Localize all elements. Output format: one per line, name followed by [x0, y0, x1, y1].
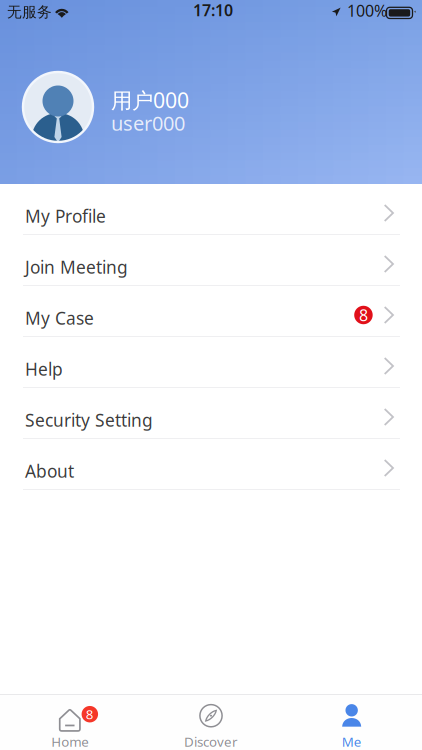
- button[interactable]: My Profile: [0, 184, 422, 235]
- staticText: Help: [25, 357, 63, 380]
- staticText: My Case: [25, 306, 94, 329]
- staticText: 100%: [347, 0, 387, 21]
- staticText: Discover: [184, 733, 238, 750]
- staticText: 8: [86, 705, 94, 723]
- staticText: Home: [51, 733, 89, 750]
- staticText: 8: [359, 304, 368, 326]
- staticText: Join Meeting: [25, 255, 128, 278]
- button[interactable]: Security Setting: [0, 388, 422, 439]
- button[interactable]: 8: [0, 695, 141, 750]
- staticText: 17:10: [193, 0, 233, 21]
- button[interactable]: Discover: [141, 695, 281, 750]
- staticText: My Profile: [25, 204, 106, 227]
- staticText: About: [25, 459, 74, 482]
- button[interactable]: Me: [281, 695, 422, 750]
- button[interactable]: Help: [0, 337, 422, 388]
- staticText: Me: [342, 733, 362, 750]
- staticText: 用户000: [111, 86, 189, 114]
- staticText: Security Setting: [25, 408, 153, 431]
- button[interactable]: Join Meeting: [0, 235, 422, 286]
- button[interactable]: About: [0, 439, 422, 490]
- button[interactable]: My Case: [0, 286, 422, 337]
- staticText: 无服务: [7, 3, 52, 21]
- staticText: user000: [111, 110, 185, 136]
